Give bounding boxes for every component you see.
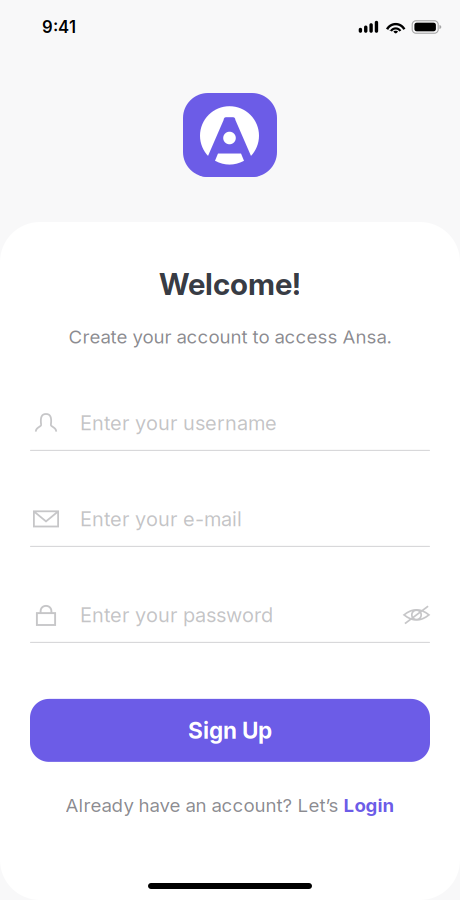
staticText: Already have an account? Let’s [65, 794, 338, 816]
staticText: Enter your password [80, 603, 273, 627]
staticText: 9:41 [42, 17, 76, 37]
staticText: Enter your username [80, 411, 277, 435]
button[interactable]: Sign Up [30, 699, 430, 762]
staticText: Welcome! [159, 266, 301, 302]
staticText: Create your account to access Ansa. [68, 325, 391, 348]
staticText: Enter your e-mail [80, 507, 242, 531]
button[interactable]: Login [343, 794, 394, 816]
staticText: Login [343, 794, 394, 816]
staticText: Sign Up [188, 717, 272, 744]
